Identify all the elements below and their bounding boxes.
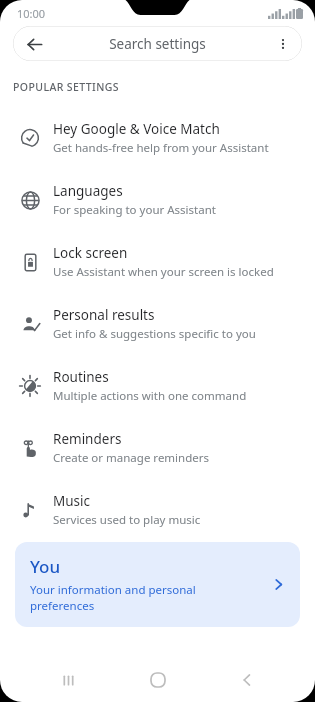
button[interactable]: Personal results (0, 293, 315, 355)
button[interactable]: Languages (0, 169, 315, 231)
button[interactable]: Back (19, 29, 49, 59)
staticText: Get hands-free help from your Assistant (53, 140, 269, 156)
button[interactable]: Back (225, 658, 269, 702)
staticText: POPULAR SETTINGS (13, 80, 119, 94)
staticText: You (30, 555, 61, 578)
staticText: Hey Google & Voice Match (53, 120, 220, 138)
button[interactable]: Music (0, 479, 315, 541)
button[interactable]: You (15, 542, 300, 627)
staticText: Get info & suggestions specific to you (53, 326, 256, 342)
staticText: Use Assistant when your screen is locked (53, 264, 274, 280)
staticText: Create or manage reminders (53, 450, 210, 466)
button[interactable]: Lock screen (0, 231, 315, 293)
staticText: For speaking to your Assistant (53, 202, 216, 218)
button[interactable]: Home (136, 658, 180, 702)
staticText: Services used to play music (53, 512, 201, 528)
staticText: Languages (53, 182, 123, 200)
button[interactable]: Back (13, 26, 302, 61)
staticText: Search settings (109, 35, 206, 53)
staticText: Your information and personal preference… (30, 582, 236, 613)
staticText: Personal results (53, 306, 155, 324)
button[interactable]: Hey Google & Voice Match (0, 107, 315, 169)
button[interactable]: Recent apps (46, 658, 90, 702)
staticText: Music (53, 492, 91, 510)
staticText: Routines (53, 368, 109, 386)
button[interactable]: Routines (0, 355, 315, 417)
button[interactable]: Reminders (0, 417, 315, 479)
staticText: 10:00 (17, 6, 46, 21)
staticText: Multiple actions with one command (53, 388, 247, 404)
staticText: Lock screen (53, 244, 128, 262)
staticText: Reminders (53, 430, 122, 448)
button[interactable]: More options (268, 29, 298, 59)
